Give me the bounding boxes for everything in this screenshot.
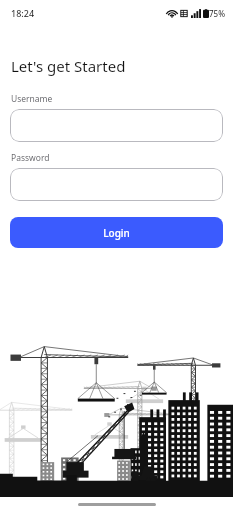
staticText: Let's get Started <box>11 56 126 76</box>
staticText: 18:24 <box>11 7 35 19</box>
button[interactable]: Login <box>10 217 223 248</box>
button[interactable] <box>10 109 223 142</box>
staticText: 75% <box>209 8 225 19</box>
staticText: Login <box>103 226 130 240</box>
staticText: Password <box>11 152 50 164</box>
button[interactable] <box>10 168 223 201</box>
staticText: Username <box>11 93 53 105</box>
